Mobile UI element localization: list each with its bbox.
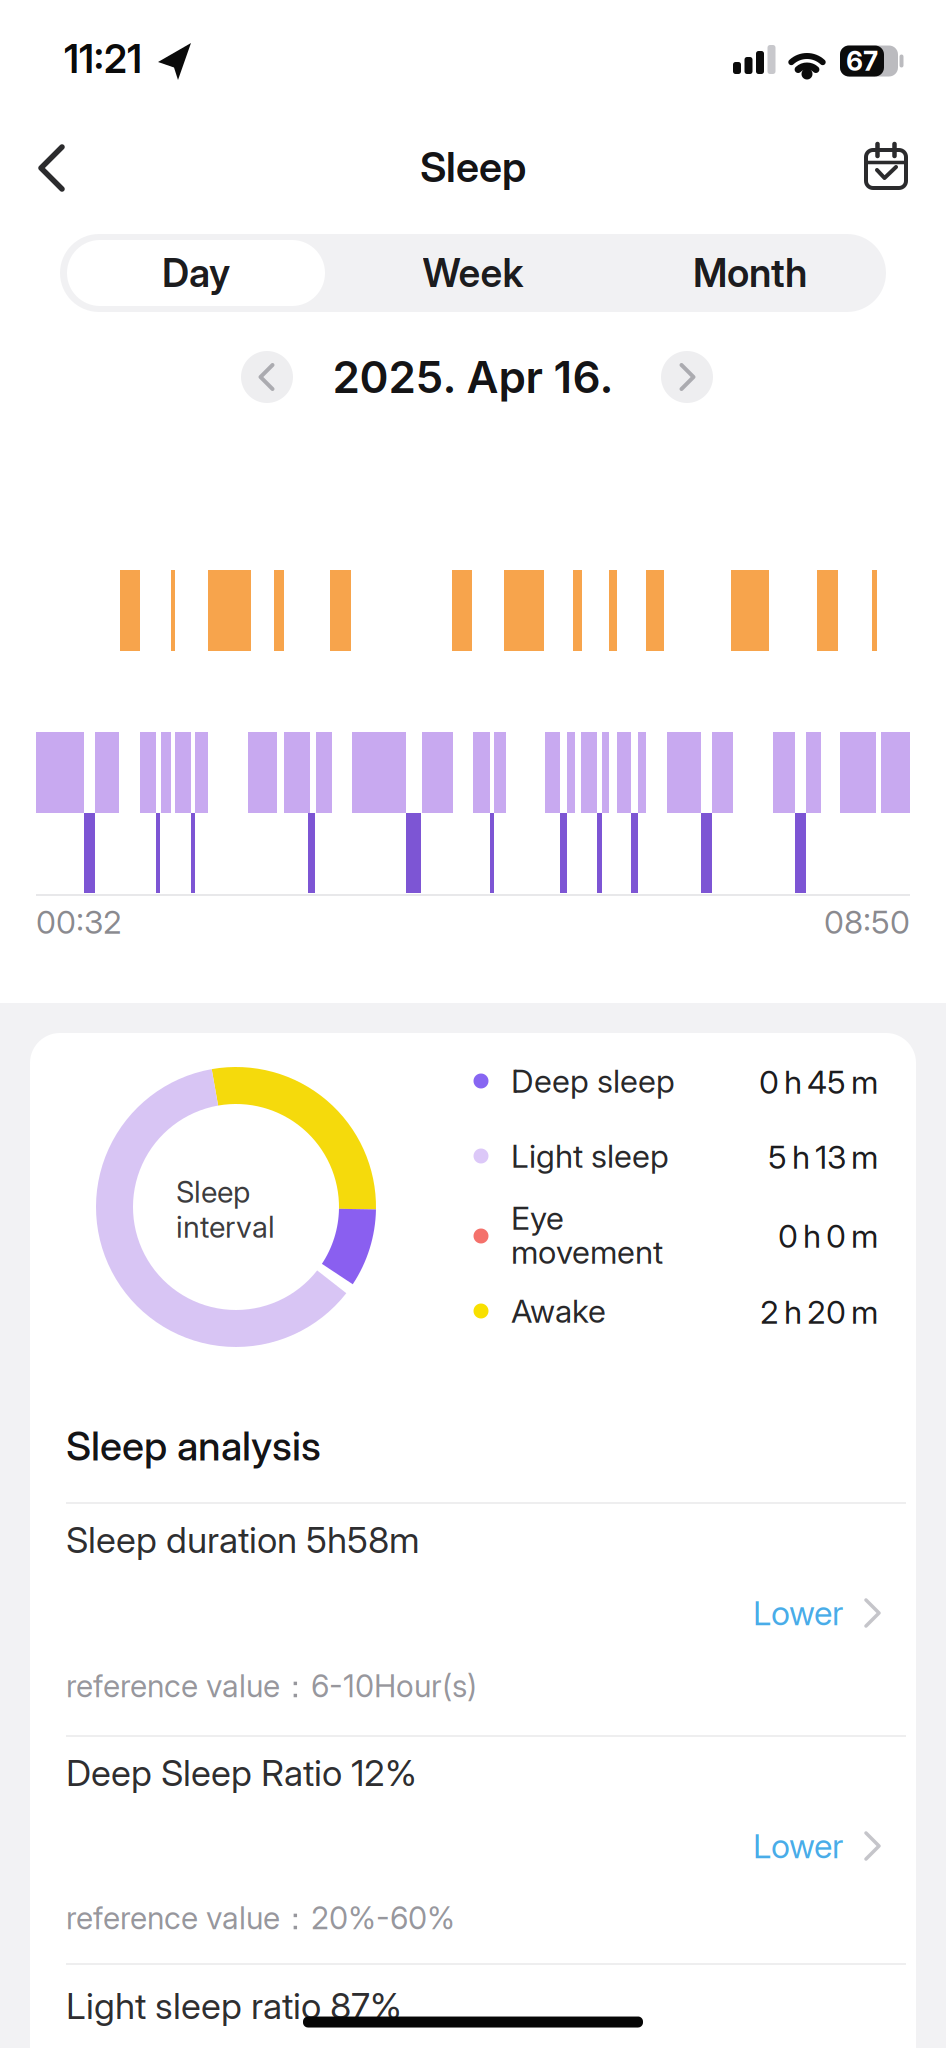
staticText: Day xyxy=(162,250,230,296)
button[interactable]: Month xyxy=(621,240,879,306)
staticText: Deep sleep xyxy=(511,1062,675,1100)
staticText: Eye xyxy=(511,1199,564,1237)
button[interactable] xyxy=(856,129,916,205)
staticText: 2 h 20 m xyxy=(760,1293,878,1331)
staticText: 67 xyxy=(846,45,878,77)
staticText: Sleep duration 5h58m xyxy=(66,1519,420,1561)
staticText: Month xyxy=(693,250,807,296)
button[interactable]: Week xyxy=(344,240,602,306)
staticText: 2025. Apr 16. xyxy=(332,351,613,403)
button[interactable]: Lower xyxy=(33,1588,913,1638)
staticText: 11:21 xyxy=(64,36,142,82)
staticText: 0 h 0 m xyxy=(778,1217,878,1255)
staticText: 00:32 xyxy=(36,903,122,941)
button[interactable]: Lower xyxy=(33,1821,913,1871)
staticText: Sleep xyxy=(420,143,526,191)
staticText: 5 h 13 m xyxy=(768,1138,878,1176)
staticText: Awake xyxy=(511,1292,606,1330)
button[interactable] xyxy=(661,351,713,403)
staticText: 08:50 xyxy=(824,903,910,941)
staticText: Deep Sleep Ratio 12% xyxy=(66,1752,417,1794)
staticText: 0 h 45 m xyxy=(759,1063,878,1101)
staticText: movement xyxy=(511,1233,663,1271)
staticText: reference value：6-10Hour(s) xyxy=(66,1668,477,1706)
staticText: Week xyxy=(422,250,523,296)
staticText: interval xyxy=(176,1210,275,1244)
staticText: Light sleep xyxy=(511,1137,669,1175)
button[interactable]: Day xyxy=(67,240,325,306)
staticText: Sleep analysis xyxy=(66,1422,321,1470)
staticText: Lower xyxy=(753,1826,843,1866)
staticText: Lower xyxy=(753,1593,843,1633)
staticText: reference value：20%-60% xyxy=(66,1900,455,1938)
button[interactable] xyxy=(241,351,293,403)
button[interactable] xyxy=(21,133,81,203)
staticText: Light sleep ratio 87% xyxy=(66,1985,402,2027)
staticText: Sleep xyxy=(176,1175,250,1209)
